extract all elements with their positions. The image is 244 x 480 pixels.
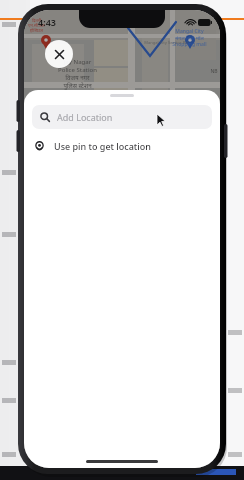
staticText: Mangal City मंगल सिटी मॉल Shopping mall	[172, 28, 207, 47]
staticText: NB	[210, 68, 218, 75]
button[interactable]: Add Location	[32, 105, 212, 129]
staticText: 4:43	[38, 16, 56, 28]
staticText: Add Location	[57, 111, 113, 123]
staticText: jay Nagar Police Station विजय नगर पुलिस …	[58, 58, 97, 90]
staticText: Use pin to get location	[54, 140, 151, 152]
button[interactable]: Use pin to get location	[24, 136, 220, 156]
staticText: दिल्ली एन.सी.आर हॉस्पिटल	[28, 18, 45, 33]
staticText: Mangal City Service Rd	[144, 40, 188, 45]
button[interactable]: Close	[45, 40, 73, 68]
